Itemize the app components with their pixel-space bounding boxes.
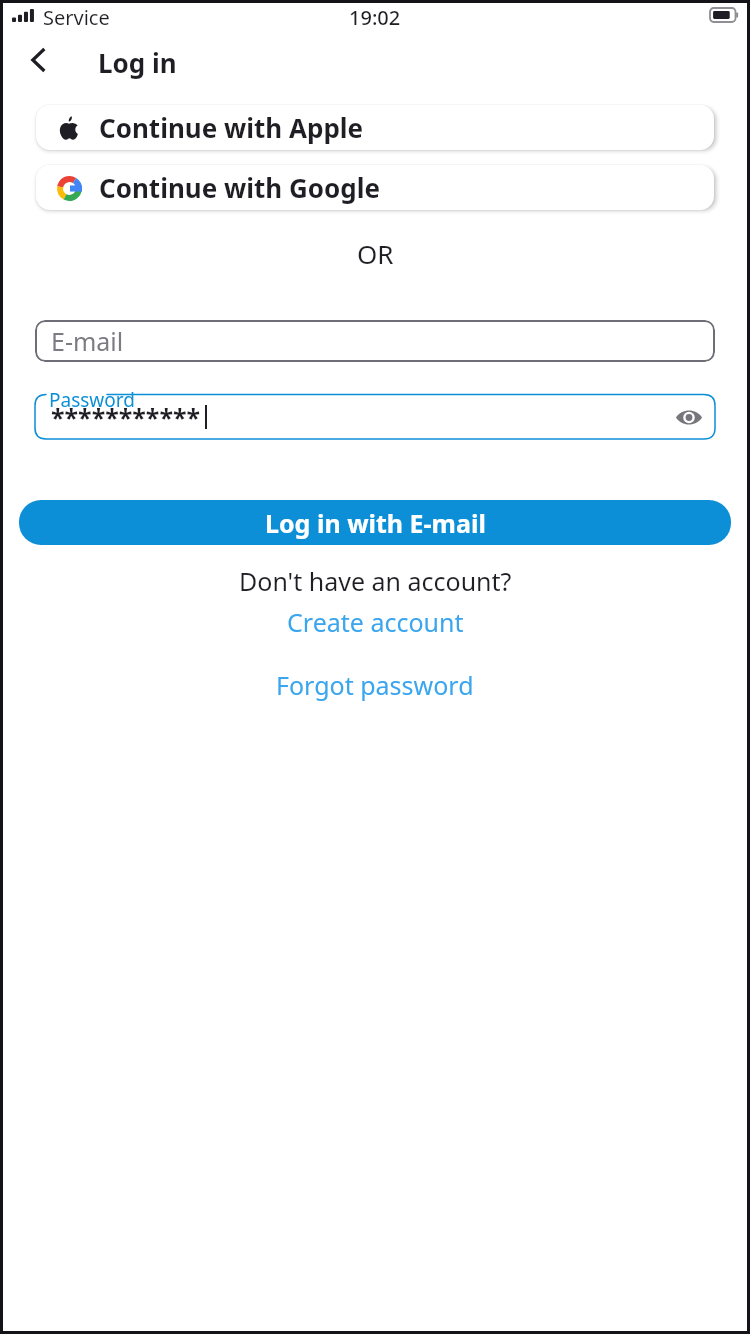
staticText: Service	[43, 4, 110, 28]
staticText: Continue with Google	[99, 170, 380, 205]
button[interactable]: Create account	[279, 603, 472, 641]
button[interactable]: Log in with E-mail	[19, 500, 731, 545]
button[interactable]: Forgot password	[268, 666, 482, 704]
staticText: Continue with Apple	[99, 110, 364, 145]
staticText: Log in	[98, 45, 177, 80]
button[interactable]: Continue with Google	[36, 165, 714, 210]
staticText: Don't have an account?	[239, 564, 512, 598]
staticText: Password	[49, 387, 135, 413]
staticText: OR	[357, 236, 394, 271]
staticText: ***********	[51, 400, 201, 434]
button[interactable]: Continue with Apple	[36, 105, 714, 150]
staticText: Create account	[287, 605, 464, 639]
button[interactable]: Back	[13, 35, 63, 85]
button[interactable]: E-mail	[35, 320, 715, 362]
button[interactable]: Show password	[669, 397, 709, 437]
staticText: 19:02	[349, 4, 401, 28]
staticText: E-mail	[51, 324, 124, 358]
staticText: Forgot password	[276, 668, 474, 702]
staticText: Log in with E-mail	[265, 506, 486, 540]
